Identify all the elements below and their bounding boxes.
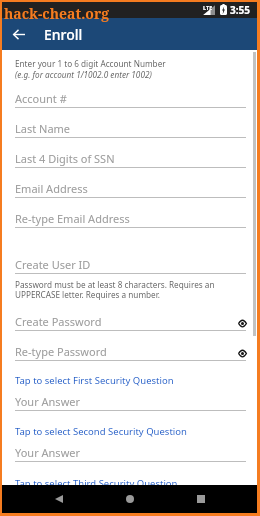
button[interactable]: Recent apps	[190, 488, 212, 510]
staticText: Your Answer	[15, 394, 81, 409]
staticText: Password must be at least 8 characters. …	[15, 279, 237, 301]
button[interactable]: Re-type Email Address	[0, 211, 260, 231]
button[interactable]: Email Address	[0, 181, 260, 201]
button[interactable]: Toggle password visibility	[235, 346, 249, 360]
staticText: Last Name	[15, 121, 71, 136]
staticText: Account #	[15, 91, 67, 106]
button[interactable]: Re-type Password	[0, 344, 260, 364]
staticText: Tap to select Third Security Question	[15, 477, 178, 490]
staticText: (e.g. for account 1/1002.0 enter 1002)	[15, 69, 152, 80]
button[interactable]: Back	[9, 24, 29, 44]
staticText: Tap to select First Security Question	[15, 374, 174, 387]
button[interactable]: Create Password	[0, 314, 260, 334]
staticText: Enroll	[44, 25, 83, 44]
staticText: hack-cheat.org	[4, 4, 110, 23]
staticText: Tap to select Second Security Question	[15, 425, 187, 438]
staticText: Email Address	[15, 181, 88, 196]
button[interactable]: Back	[48, 488, 70, 510]
button[interactable]: Last Name	[0, 121, 260, 141]
button[interactable]: Tap to select First Security Question	[0, 374, 260, 388]
staticText: Create User ID	[15, 257, 91, 272]
staticText: Re-type Password	[15, 344, 107, 359]
staticText: Create Password	[15, 314, 102, 329]
staticText: Re-type Email Address	[15, 211, 130, 226]
staticText: LTE	[203, 4, 213, 11]
button[interactable]: Home	[119, 488, 141, 510]
button[interactable]: Tap to select Third Security Question	[0, 477, 260, 491]
staticText: Enter your 1 to 6 digit Account Number	[15, 58, 166, 69]
staticText: 3:55	[230, 3, 250, 17]
button[interactable]: Your Answer	[0, 394, 260, 414]
button[interactable]: Toggle password visibility	[235, 316, 249, 330]
staticText: Last 4 Digits of SSN	[15, 151, 115, 166]
button[interactable]: Your Answer	[0, 445, 260, 465]
staticText: Your Answer	[15, 445, 81, 460]
button[interactable]: Tap to select Second Security Question	[0, 425, 260, 439]
button[interactable]: Account #	[0, 91, 260, 111]
button[interactable]: Last 4 Digits of SSN	[0, 151, 260, 171]
button[interactable]: Create User ID	[0, 257, 260, 277]
